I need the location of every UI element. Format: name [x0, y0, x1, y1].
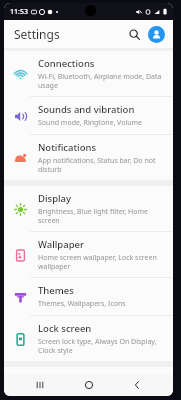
button[interactable]: Back [124, 374, 150, 396]
staticText: Connections [38, 57, 95, 70]
staticText: Home screen wallpaper, Lock screen wallp… [38, 253, 165, 271]
staticText: App notifications, Status bar, Do not di… [38, 156, 165, 174]
staticText: Sound mode, Ringtone, Volume [38, 118, 143, 128]
button[interactable]: Wallpaper [4, 232, 173, 277]
staticText: Lock screen [38, 322, 92, 335]
staticText: Themes [38, 284, 74, 297]
staticText: Screen lock type, Always On Display, Clo… [38, 337, 165, 355]
staticText: Themes, Wallpapers, Icons [38, 299, 126, 309]
button[interactable]: Connections [4, 51, 173, 96]
staticText: Display [38, 192, 72, 205]
staticText: Sounds and vibration [38, 103, 135, 116]
button[interactable]: Themes [4, 278, 173, 315]
button[interactable]: Account [148, 26, 165, 43]
button[interactable]: Notifications [4, 135, 173, 180]
button[interactable]: Lock screen [4, 316, 173, 361]
button[interactable]: Recents [27, 374, 53, 396]
button[interactable]: Home [76, 374, 102, 396]
button[interactable]: Search [124, 24, 144, 44]
staticText: Brightness, Blue light filter, Home scre… [38, 207, 165, 225]
button[interactable]: Sounds and vibration [4, 97, 173, 134]
staticText: 11:53 [10, 7, 28, 17]
staticText: Settings [14, 26, 60, 42]
button[interactable]: Display [4, 186, 173, 231]
staticText: Wallpaper [38, 238, 84, 251]
staticText: Wi-Fi, Bluetooth, Airplane mode, Data us… [38, 72, 165, 90]
staticText: Notifications [38, 141, 97, 154]
